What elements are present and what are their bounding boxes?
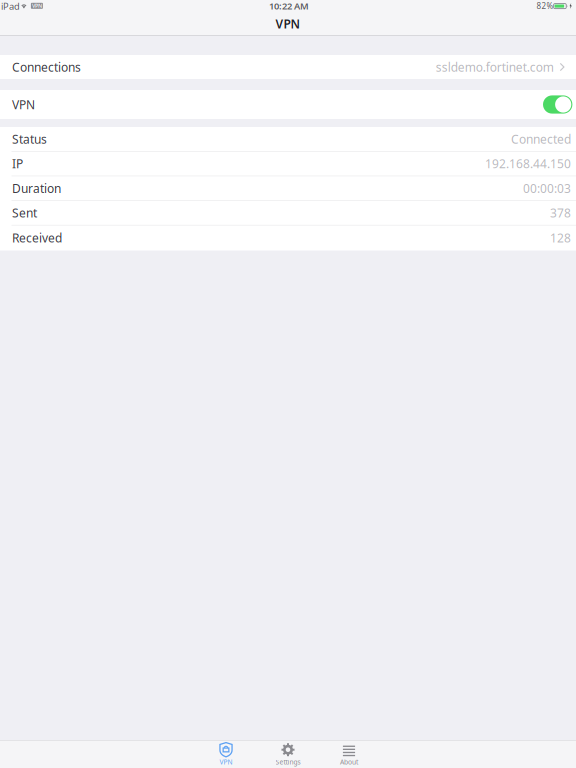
staticText: IP [12, 156, 23, 172]
staticText: VPN [275, 16, 300, 32]
button[interactable]: About [325, 740, 373, 768]
staticText: Sent [12, 205, 37, 221]
staticText: Connections [12, 59, 81, 75]
staticText: 82% [536, 1, 553, 11]
staticText: Status [12, 131, 47, 147]
staticText: Received [12, 230, 62, 246]
staticText: About [340, 758, 358, 766]
staticText: 192.168.44.150 [485, 156, 571, 172]
staticText: VPN [219, 758, 232, 766]
button[interactable]: Settings [264, 740, 312, 768]
staticText: 378 [550, 205, 571, 221]
button[interactable]: Connections [0, 55, 576, 79]
button[interactable]: VPN [202, 740, 250, 768]
staticText: 00:00:03 [523, 180, 571, 196]
staticText: 128 [550, 230, 571, 246]
staticText: 10:22 AM [269, 0, 309, 12]
staticText: Connected [511, 131, 571, 147]
staticText: iPad [1, 0, 20, 12]
button[interactable]: VPN on [543, 95, 572, 114]
staticText: Duration [12, 180, 61, 196]
staticText: Settings [275, 758, 300, 766]
staticText: VPN [12, 96, 35, 112]
staticText: ssldemo.fortinet.com [436, 59, 554, 75]
staticText: VPN [32, 2, 42, 9]
